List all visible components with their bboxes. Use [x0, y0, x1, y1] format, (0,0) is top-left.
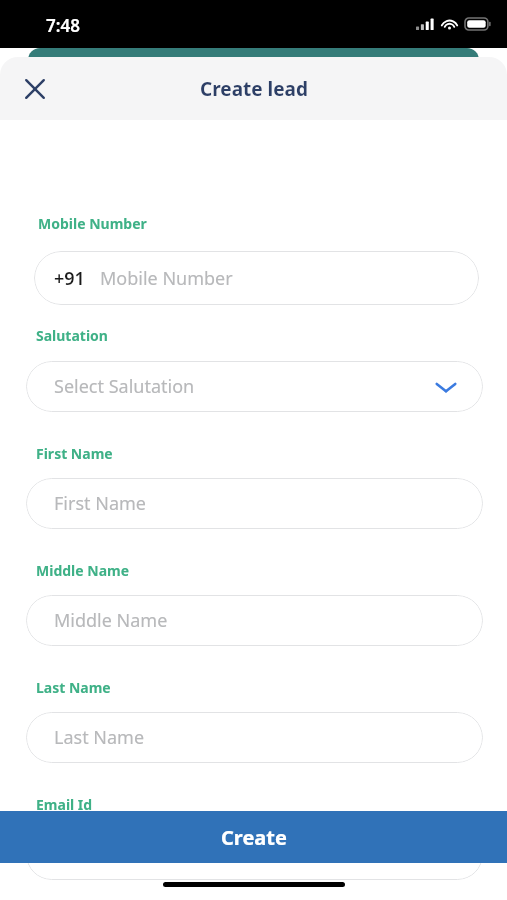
- staticText: First Name: [54, 491, 146, 516]
- staticText: Email Id: [36, 795, 93, 814]
- staticText: Last Name: [36, 678, 111, 697]
- button[interactable]: Close: [14, 68, 56, 110]
- staticText: Create: [221, 824, 287, 851]
- staticText: Mobile Number: [38, 214, 147, 233]
- staticText: Create lead: [200, 76, 308, 102]
- staticText: Middle Name: [54, 608, 168, 633]
- button[interactable]: +91: [34, 251, 479, 305]
- staticText: Middle Name: [36, 561, 130, 580]
- staticText: Last Name: [54, 725, 145, 750]
- button[interactable]: Select Salutation: [26, 361, 483, 412]
- button[interactable]: First Name: [26, 478, 483, 529]
- button[interactable]: Create: [0, 811, 507, 863]
- button[interactable]: Last Name: [26, 712, 483, 763]
- staticText: 7:48: [46, 14, 80, 37]
- staticText: Mobile Number: [100, 266, 233, 291]
- staticText: Salutation: [36, 326, 108, 345]
- button[interactable]: Middle Name: [26, 595, 483, 646]
- staticText: Email Id: [54, 842, 123, 867]
- button[interactable]: Email Id: [26, 829, 483, 880]
- staticText: +91: [54, 266, 85, 291]
- staticText: Select Salutation: [54, 374, 195, 399]
- staticText: First Name: [36, 444, 113, 463]
